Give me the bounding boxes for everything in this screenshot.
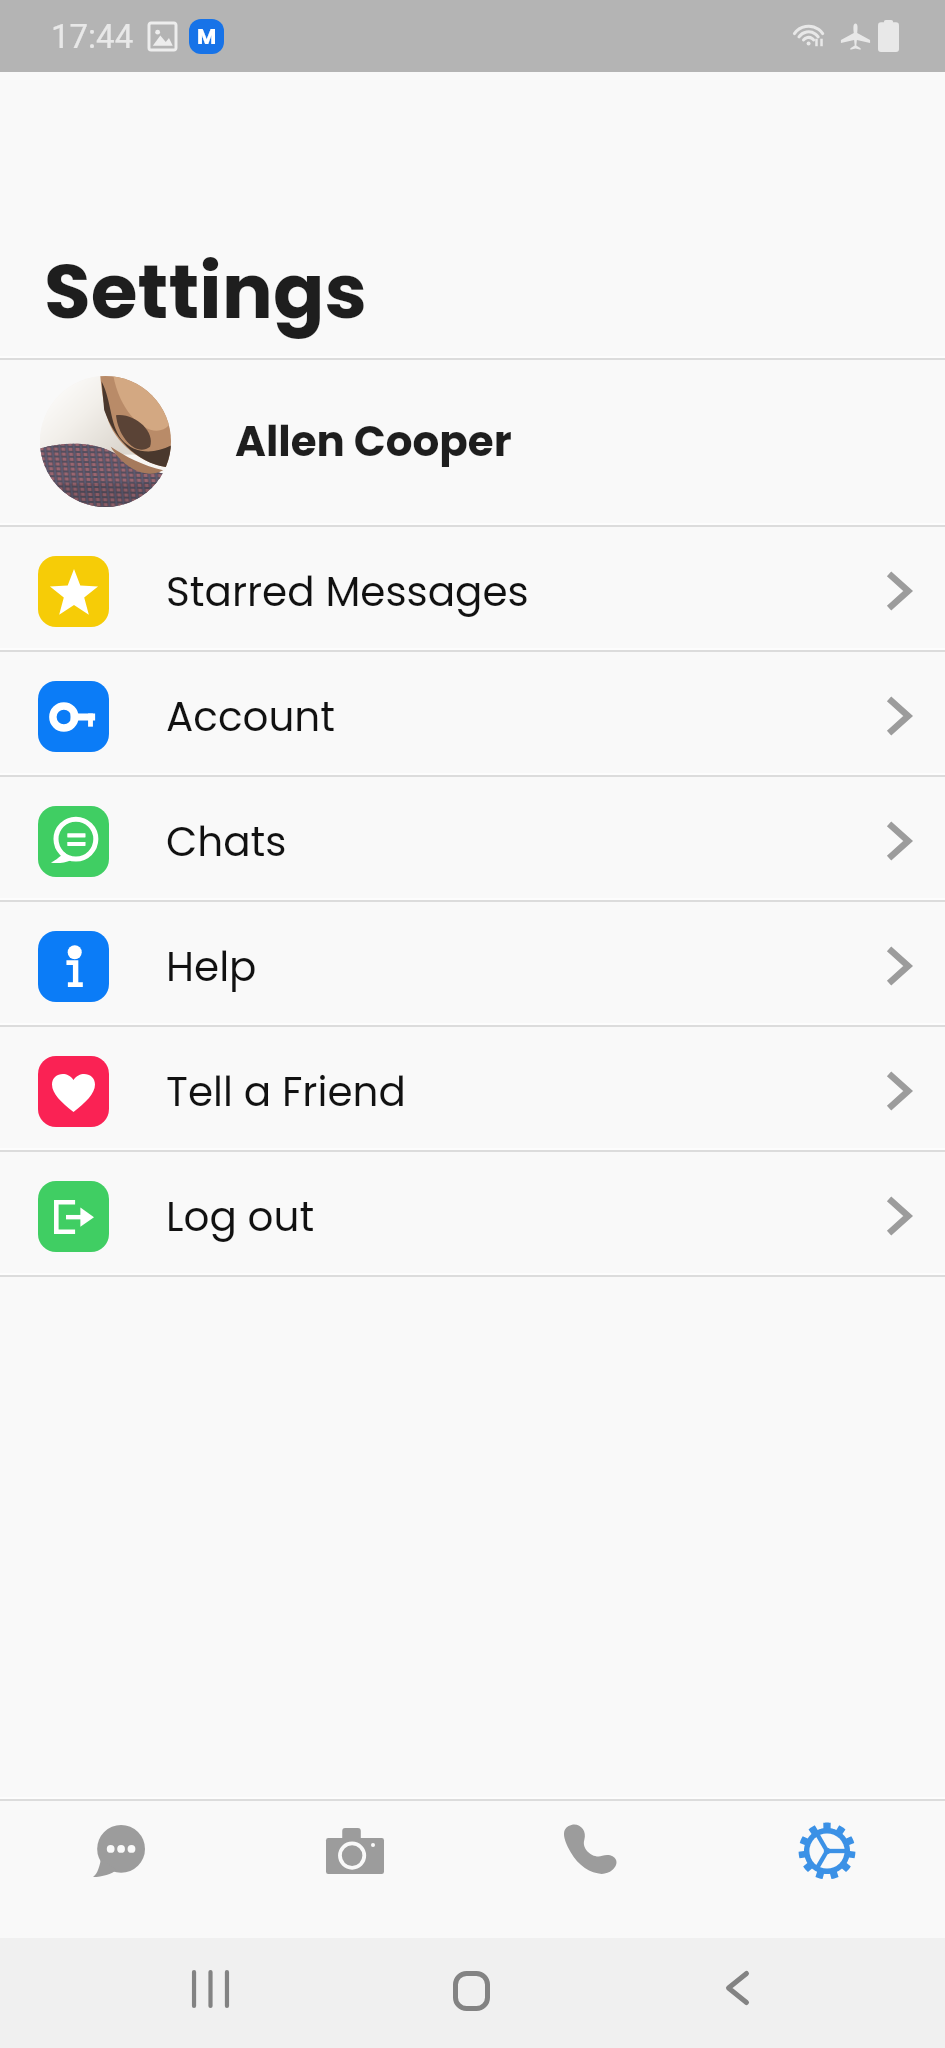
staticText: M xyxy=(197,22,217,51)
button[interactable]: Starred Messages xyxy=(0,527,945,648)
staticText: Log out xyxy=(166,1188,315,1245)
button[interactable]: Settings xyxy=(709,1801,945,1938)
staticText: Chats xyxy=(166,813,287,870)
button[interactable]: Allen Cooper xyxy=(0,360,945,523)
button[interactable]: Home xyxy=(453,1971,490,2011)
button[interactable]: Log out xyxy=(0,1152,945,1273)
staticText: Tell a Friend xyxy=(166,1063,406,1120)
button[interactable]: Recents xyxy=(192,1972,229,2006)
button[interactable]: Calls xyxy=(473,1801,709,1938)
button[interactable]: Help xyxy=(0,902,945,1023)
button[interactable]: Account xyxy=(0,652,945,773)
staticText: Starred Messages xyxy=(166,563,529,620)
staticText: Settings xyxy=(44,238,367,344)
button[interactable]: Camera xyxy=(237,1801,473,1938)
button[interactable]: Tell a Friend xyxy=(0,1027,945,1148)
button[interactable]: Chats xyxy=(0,777,945,898)
staticText: Help xyxy=(166,938,257,995)
staticText: 17:44 xyxy=(51,17,134,56)
button[interactable]: Back xyxy=(726,1971,749,2005)
button[interactable]: Chats xyxy=(0,1801,237,1938)
staticText: Account xyxy=(166,688,335,745)
staticText: Allen Cooper xyxy=(235,412,512,471)
